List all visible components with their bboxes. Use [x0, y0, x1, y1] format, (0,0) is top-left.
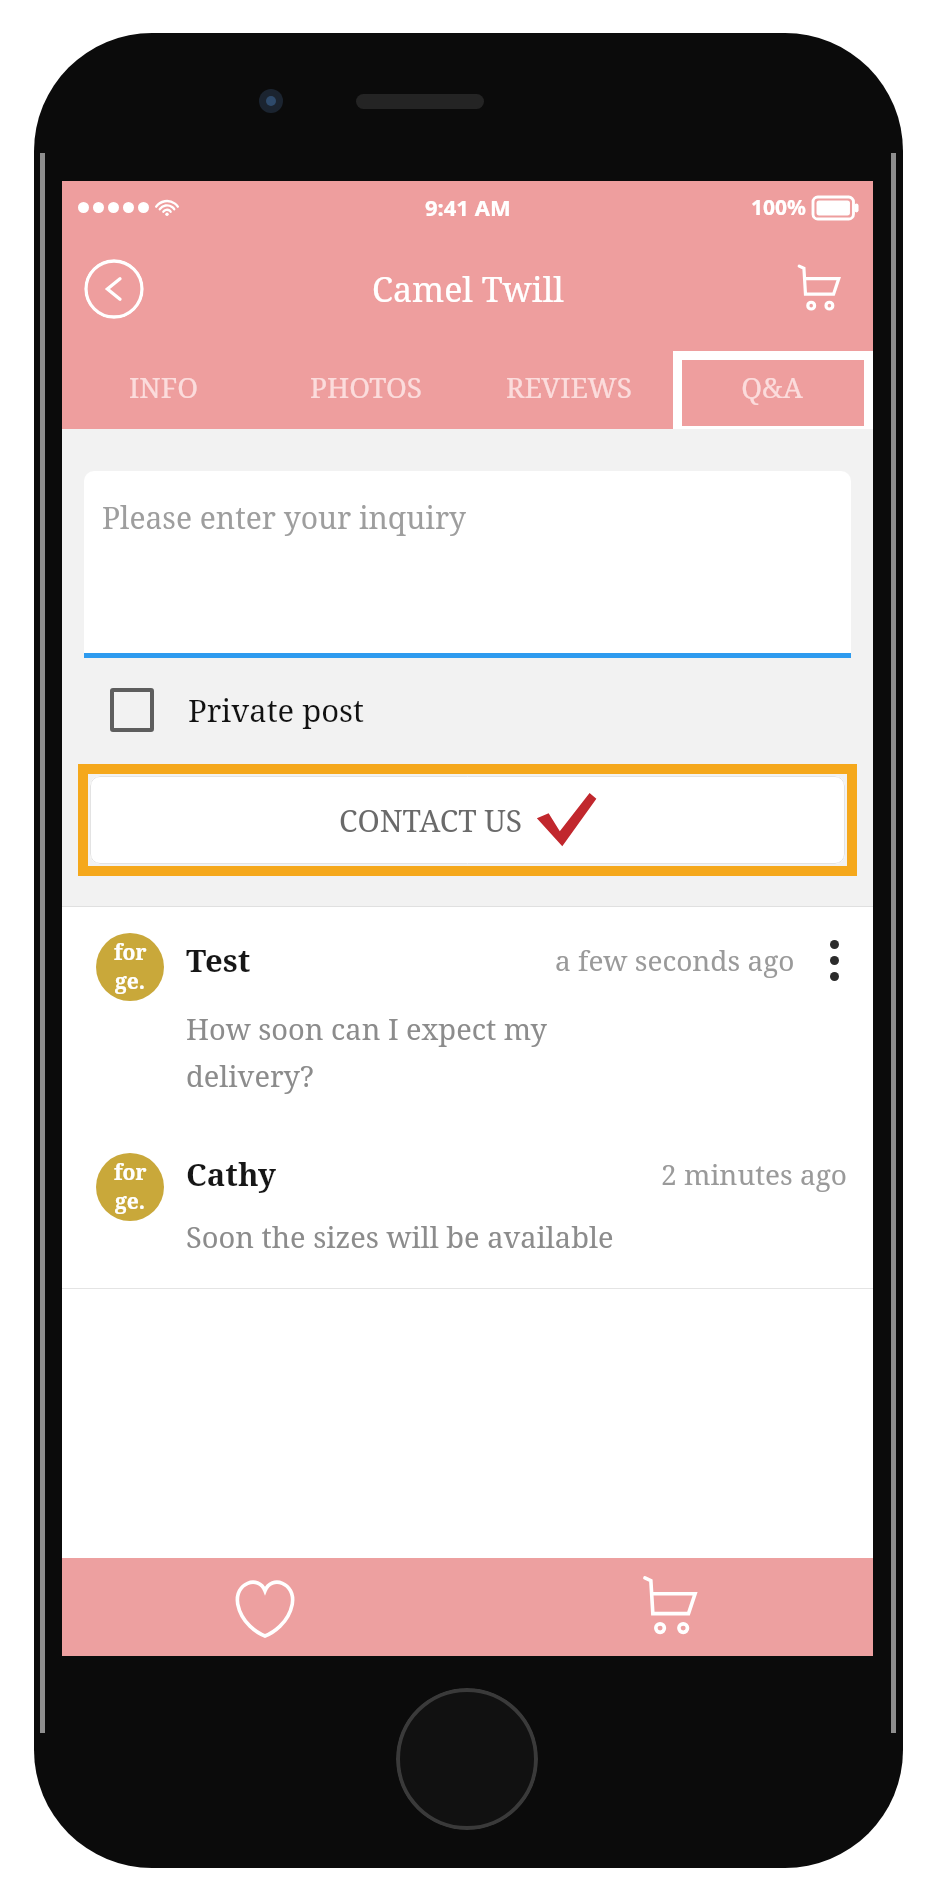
- staticText: ge.: [115, 967, 145, 996]
- button[interactable]: Cart: [791, 261, 847, 317]
- staticText: Please enter your inquiry: [102, 497, 467, 538]
- button[interactable]: Please enter your inquiry: [84, 471, 851, 653]
- staticText: ge.: [115, 1187, 145, 1216]
- staticText: Test: [186, 939, 251, 981]
- button[interactable]: Favorites: [62, 1558, 467, 1656]
- staticText: 100%: [751, 193, 806, 222]
- staticText: Cathy: [186, 1153, 276, 1195]
- button[interactable]: REVIEWS: [467, 345, 670, 429]
- button[interactable]: CONTACT US: [90, 776, 845, 864]
- button[interactable]: Back: [84, 259, 144, 319]
- staticText: PHOTOS: [310, 368, 422, 406]
- staticText: CONTACT US: [339, 800, 523, 841]
- button[interactable]: for: [62, 1127, 873, 1288]
- staticText: 2 minutes ago: [661, 1155, 847, 1193]
- staticText: Camel Twill: [372, 266, 564, 312]
- staticText: a few seconds ago: [555, 941, 795, 979]
- button[interactable]: INFO: [62, 345, 264, 429]
- button[interactable]: Private post: [110, 688, 365, 732]
- staticText: for: [114, 938, 147, 967]
- button[interactable]: Q&A: [670, 345, 873, 429]
- staticText: delivery?: [186, 1056, 314, 1095]
- staticText: Q&A: [741, 368, 803, 406]
- button[interactable]: Cart: [467, 1558, 873, 1656]
- staticText: for: [114, 1158, 147, 1187]
- staticText: Soon the sizes will be available: [186, 1217, 614, 1256]
- button[interactable]: for: [62, 907, 873, 1127]
- staticText: 9:41 AM: [425, 192, 511, 222]
- staticText: REVIEWS: [506, 368, 632, 406]
- staticText: How soon can I expect my: [186, 1009, 547, 1048]
- staticText: Private post: [188, 689, 365, 731]
- button[interactable]: PHOTOS: [264, 345, 467, 429]
- staticText: INFO: [129, 368, 198, 406]
- button[interactable]: More options: [821, 933, 847, 987]
